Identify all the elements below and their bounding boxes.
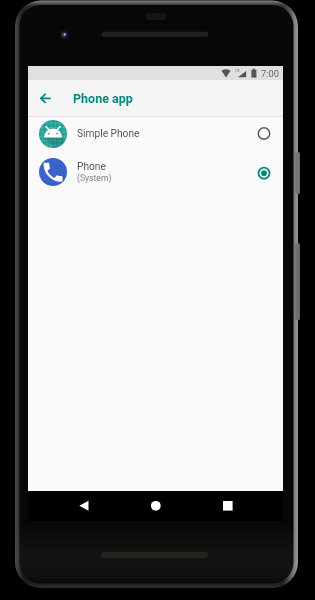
staticText: Phone (77, 161, 106, 173)
staticText: Phone app (73, 91, 133, 106)
button[interactable]: Recent apps (209, 491, 247, 521)
button[interactable]: Navigate up (34, 86, 58, 110)
staticText: LTE (235, 69, 240, 73)
button[interactable]: Phone (28, 150, 283, 194)
button[interactable]: Back (61, 491, 99, 521)
staticText: 7:00 (261, 68, 279, 79)
staticText: (System) (77, 173, 112, 183)
button[interactable]: Simple Phone (28, 117, 283, 150)
button[interactable]: Home (136, 491, 174, 521)
staticText: Simple Phone (77, 128, 140, 140)
